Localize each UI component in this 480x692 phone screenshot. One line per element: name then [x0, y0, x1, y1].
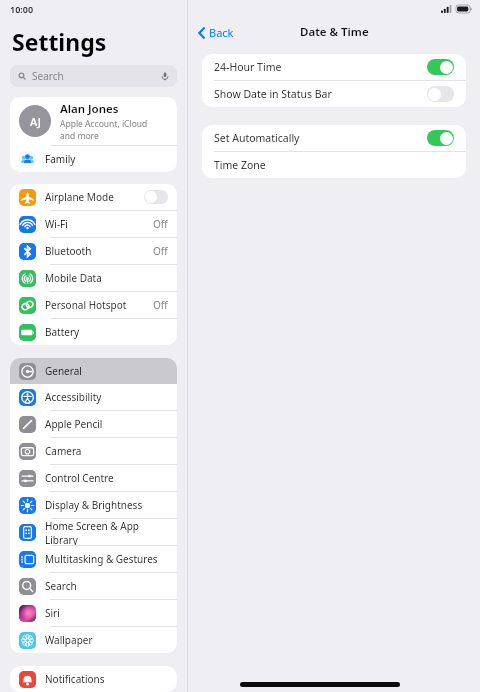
button[interactable]: On [427, 59, 454, 75]
button[interactable]: Display & Brightness [10, 492, 177, 518]
staticText: Wi-Fi [45, 217, 153, 231]
staticText: Accessibility [45, 390, 168, 404]
button[interactable]: Camera [10, 438, 177, 464]
button[interactable]: Control Centre [10, 465, 177, 491]
staticText: Back [209, 25, 234, 40]
staticText: AJ [30, 114, 41, 129]
button[interactable]: Search [10, 65, 177, 87]
button[interactable]: Notifications [10, 666, 177, 692]
staticText: Wallpaper [45, 633, 168, 647]
staticText: Apple Pencil [45, 417, 168, 431]
staticText: Search [45, 579, 168, 593]
button[interactable]: Wallpaper [10, 627, 177, 653]
staticText: Apple Account, iCloud [60, 118, 148, 130]
button[interactable]: Apple Pencil [10, 411, 177, 437]
button[interactable]: Time Zone [202, 152, 466, 178]
staticText: Alan Jones [60, 101, 119, 117]
button[interactable]: Accessibility [10, 384, 177, 410]
staticText: Off [153, 217, 168, 231]
button[interactable]: Siri [10, 600, 177, 626]
staticText: Show Date in Status Bar [214, 87, 427, 101]
staticText: Time Zone [214, 158, 266, 172]
button[interactable]: Off [144, 190, 168, 204]
staticText: Family [45, 152, 168, 166]
button[interactable]: Battery [10, 319, 177, 345]
staticText: 24-Hour Time [214, 60, 427, 74]
button[interactable]: 24-Hour Time [202, 54, 466, 80]
button[interactable]: Set Automatically [202, 125, 466, 151]
button[interactable]: Bluetooth [10, 238, 177, 264]
button[interactable]: Mobile Data [10, 265, 177, 291]
button[interactable]: Off [427, 86, 454, 102]
button[interactable]: Multitasking & Gestures [10, 546, 177, 572]
staticText: Battery [45, 325, 168, 339]
staticText: Siri [45, 606, 168, 620]
staticText: Set Automatically [214, 131, 427, 145]
staticText: Home Screen & App Library [45, 519, 168, 545]
button[interactable]: On [427, 130, 454, 146]
staticText: and more [60, 130, 99, 142]
button[interactable]: Back [196, 23, 236, 42]
button[interactable]: Wi-Fi [10, 211, 177, 237]
staticText: Off [153, 298, 168, 312]
button[interactable]: Search [10, 573, 177, 599]
staticText: Airplane Mode [45, 190, 144, 204]
staticText: Off [153, 244, 168, 258]
staticText: Search [32, 69, 160, 83]
staticText: Bluetooth [45, 244, 153, 258]
staticText: Control Centre [45, 471, 168, 485]
button[interactable]: Personal Hotspot [10, 292, 177, 318]
button[interactable]: Family [10, 146, 177, 172]
button[interactable]: AJ [10, 97, 177, 145]
staticText: Mobile Data [45, 271, 168, 285]
staticText: Notifications [45, 672, 168, 686]
staticText: Settings [12, 26, 107, 57]
button[interactable]: Home Screen & App Library [10, 519, 177, 545]
button[interactable]: Airplane Mode [10, 184, 177, 210]
staticText: Date & Time [300, 24, 369, 40]
staticText: Multitasking & Gestures [45, 552, 168, 566]
button[interactable]: Show Date in Status Bar [202, 81, 466, 107]
staticText: Personal Hotspot [45, 298, 153, 312]
staticText: General [45, 364, 168, 378]
button[interactable]: General [10, 358, 177, 384]
staticText: Display & Brightness [45, 498, 168, 512]
staticText: 10:00 [10, 3, 34, 15]
staticText: Camera [45, 444, 168, 458]
